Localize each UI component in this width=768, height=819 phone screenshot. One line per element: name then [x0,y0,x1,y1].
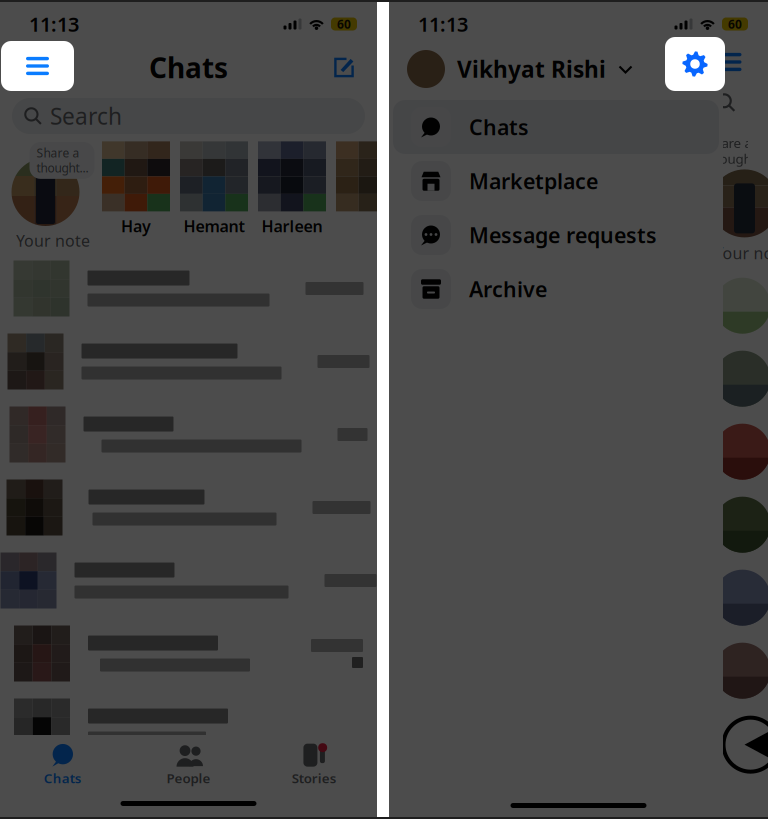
staticText: Your note [16,230,90,251]
button[interactable]: Vikhyat Rishi [389,42,723,96]
staticText: Chats [469,113,529,141]
staticText: Marketplace [469,167,598,195]
staticText: Stories [292,769,337,787]
staticText: 11:13 [418,11,468,37]
button[interactable] [0,544,377,617]
button[interactable] [0,398,377,471]
staticText: thought... [36,160,88,176]
button[interactable]: Menu [8,43,58,91]
staticText: Search [50,101,122,131]
button[interactable]: Chats [389,100,723,154]
staticText: Harleen [261,215,322,237]
button[interactable]: Search [0,93,377,142]
button[interactable] [0,471,377,544]
staticText: Share a [36,145,79,161]
button[interactable] [0,252,377,325]
button[interactable] [0,617,377,690]
staticText: Archive [469,275,547,303]
button[interactable]: Stories [251,742,377,788]
staticText: 60 [337,16,351,32]
button[interactable]: Highlighted control [1,41,74,91]
staticText: 11:13 [29,11,79,37]
button[interactable]: Marketplace [389,154,723,208]
staticText: thought... [706,150,768,167]
button[interactable]: New message [319,43,369,91]
button[interactable]: Highlighted control [665,37,725,91]
staticText: Share a [706,134,751,152]
staticText: Hay [121,215,151,237]
staticText: People [166,769,210,787]
staticText: 60 [728,16,742,32]
button[interactable]: Archive [389,262,723,316]
staticText: Message requests [469,221,657,249]
button[interactable]: People [126,742,251,788]
button[interactable] [0,690,377,763]
staticText: Vikhyat Rishi [457,54,606,84]
staticText: Chats [44,769,82,787]
staticText: Hemant [183,215,244,237]
button[interactable]: Message requests [389,208,723,262]
button[interactable]: Chats [0,742,126,788]
staticText: Your note [714,242,768,264]
staticText: Chats [149,49,228,86]
button[interactable] [0,325,377,398]
